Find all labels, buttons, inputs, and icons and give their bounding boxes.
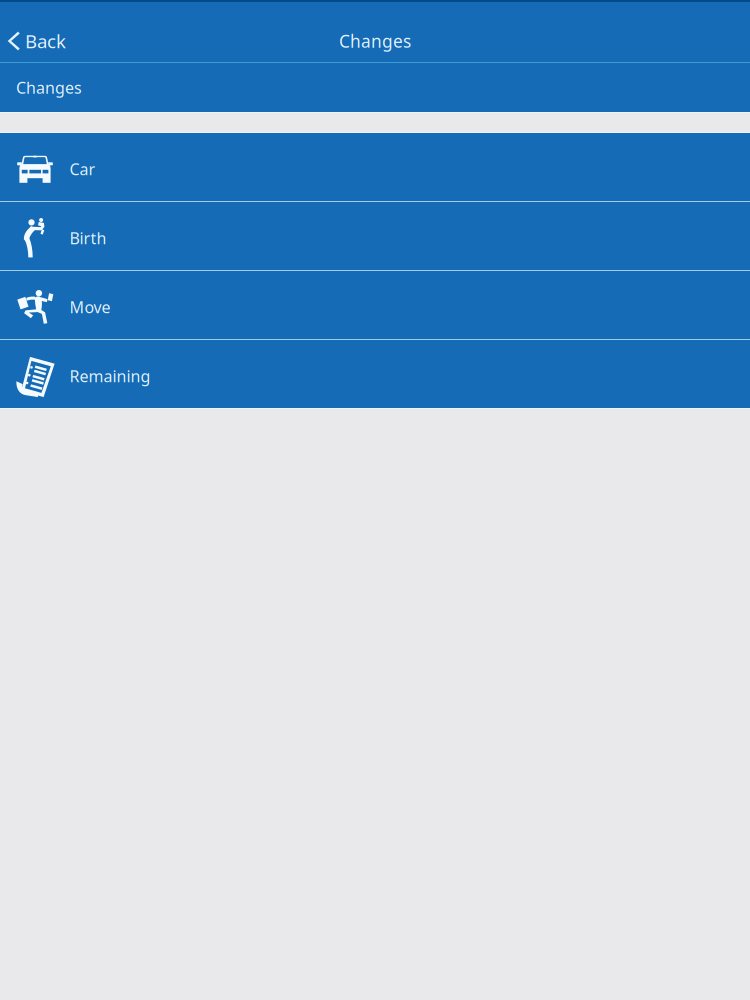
button[interactable]: Back: [0, 20, 80, 62]
staticText: Move: [69, 296, 110, 318]
staticText: Changes: [16, 77, 82, 98]
staticText: Back: [25, 29, 66, 53]
button[interactable]: Car: [0, 133, 750, 201]
button[interactable]: Birth: [0, 202, 750, 270]
staticText: Remaining: [69, 365, 150, 387]
staticText: Car: [69, 158, 95, 180]
staticText: Birth: [69, 227, 106, 249]
button[interactable]: Remaining: [0, 340, 750, 408]
button[interactable]: Move: [0, 271, 750, 339]
staticText: Changes: [339, 29, 411, 52]
